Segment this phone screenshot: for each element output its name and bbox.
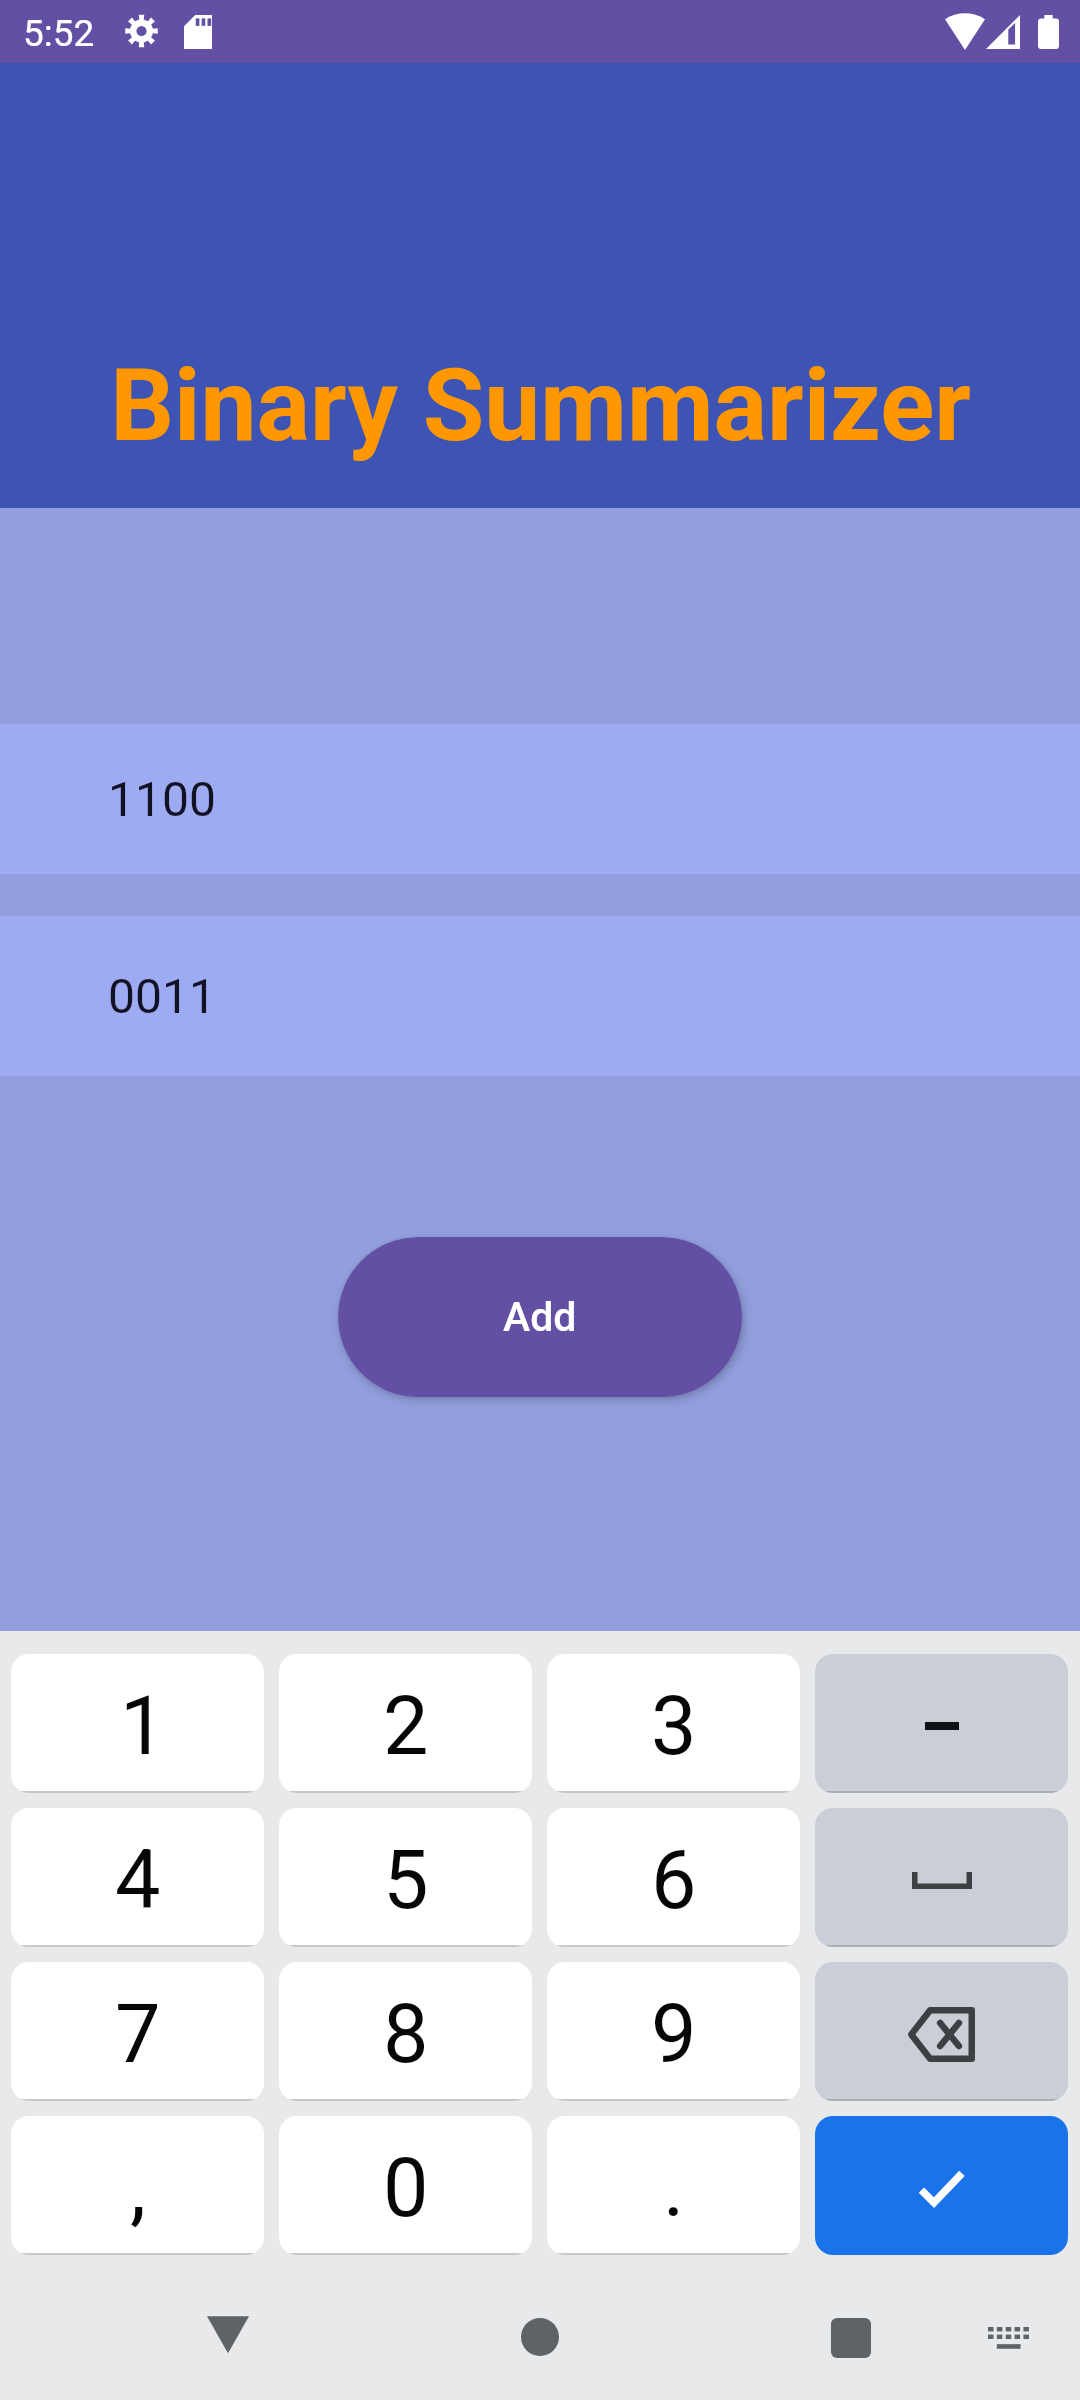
button[interactable]: 3 bbox=[547, 1654, 800, 1793]
staticText: 3 bbox=[651, 1679, 697, 1774]
staticText: 5 bbox=[383, 1833, 429, 1928]
button[interactable]: 6 bbox=[547, 1808, 800, 1947]
button[interactable]: Space bbox=[815, 1808, 1068, 1947]
button[interactable]: Back bbox=[207, 2313, 249, 2355]
button[interactable]: Backspace bbox=[815, 1962, 1068, 2101]
staticText: 9 bbox=[651, 1987, 697, 2082]
staticText: 7 bbox=[115, 1987, 161, 2082]
staticText: , bbox=[130, 2141, 146, 2236]
button[interactable]: 9 bbox=[547, 1962, 800, 2101]
button[interactable]: 1 bbox=[11, 1654, 264, 1793]
button[interactable]: 0 bbox=[279, 2116, 532, 2255]
button[interactable]: Switch keyboard bbox=[988, 2327, 1029, 2349]
button[interactable]: 5 bbox=[279, 1808, 532, 1947]
button[interactable]: Enter bbox=[815, 2116, 1068, 2255]
staticText: 1 bbox=[120, 1679, 166, 1774]
staticText: 0011 bbox=[108, 968, 216, 1024]
staticText: 0 bbox=[383, 2141, 429, 2236]
button[interactable]: 1100 bbox=[0, 724, 1080, 874]
button[interactable]: Minus bbox=[815, 1654, 1068, 1793]
button[interactable]: 7 bbox=[11, 1962, 264, 2101]
staticText: 6 bbox=[651, 1833, 697, 1928]
button[interactable]: Home bbox=[521, 2318, 559, 2356]
button[interactable]: Recents bbox=[831, 2318, 871, 2358]
staticText: Binary Summarizer bbox=[110, 347, 971, 464]
staticText: 4 bbox=[115, 1833, 161, 1928]
staticText: Add bbox=[503, 1293, 577, 1341]
staticText: 1100 bbox=[108, 771, 216, 827]
button[interactable]: 8 bbox=[279, 1962, 532, 2101]
button[interactable]: 0011 bbox=[0, 916, 1080, 1076]
staticText: . bbox=[663, 2141, 685, 2236]
staticText: 8 bbox=[383, 1987, 429, 2082]
staticText: 2 bbox=[383, 1679, 429, 1774]
button[interactable]: 4 bbox=[11, 1808, 264, 1947]
button[interactable]: 2 bbox=[279, 1654, 532, 1793]
button[interactable]: . bbox=[547, 2116, 800, 2255]
staticText: 5:52 bbox=[23, 12, 95, 55]
button[interactable]: , bbox=[11, 2116, 264, 2255]
button[interactable]: Add bbox=[338, 1237, 742, 1397]
